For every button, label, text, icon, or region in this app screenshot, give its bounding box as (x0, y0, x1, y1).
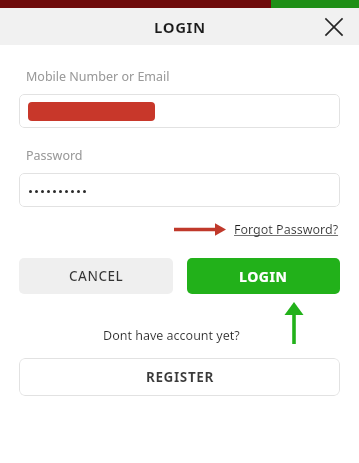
staticText: Password (26, 147, 83, 164)
staticText: Mobile Number or Email (26, 68, 170, 85)
button[interactable]: LOGIN (187, 258, 340, 294)
button[interactable]: CANCEL (19, 258, 173, 294)
button[interactable]: REGISTER (19, 358, 340, 396)
staticText: LOGIN (154, 17, 206, 37)
button[interactable]: Close (317, 10, 351, 44)
button[interactable] (19, 94, 340, 128)
staticText: LOGIN (239, 267, 288, 286)
staticText: CANCEL (69, 267, 124, 285)
staticText: REGISTER (146, 368, 214, 386)
button[interactable]: Forgot Password? (234, 221, 340, 238)
staticText: Dont have account yet? (103, 327, 240, 344)
staticText: Forgot Password? (234, 221, 339, 238)
button[interactable] (19, 173, 340, 207)
